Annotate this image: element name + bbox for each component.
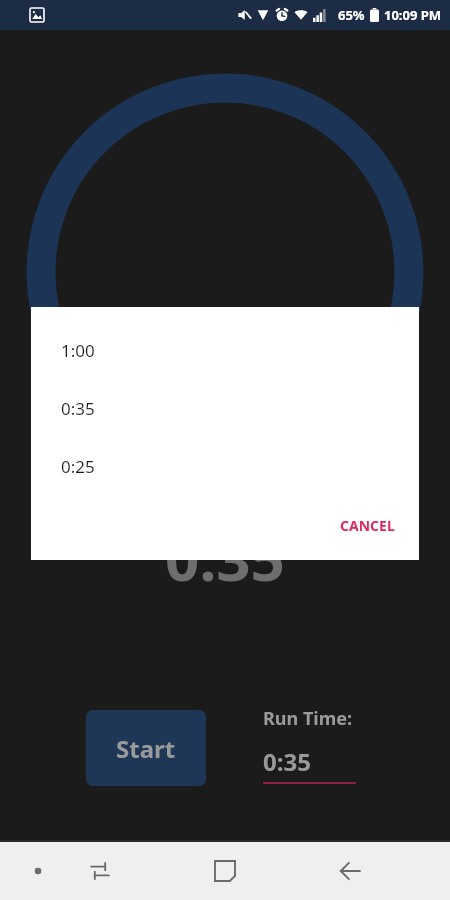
- staticText: Start: [116, 732, 176, 765]
- button[interactable]: CANCEL: [332, 510, 403, 541]
- button[interactable]: 0:25: [31, 437, 419, 495]
- button[interactable]: Switch apps: [78, 849, 122, 893]
- staticText: CANCEL: [340, 516, 395, 535]
- staticText: 10:09 PM: [384, 6, 442, 24]
- staticText: 1:00: [61, 339, 95, 362]
- button[interactable]: Back: [328, 849, 372, 893]
- staticText: 0:25: [61, 455, 95, 478]
- button[interactable]: Menu: [16, 849, 60, 893]
- button[interactable]: 1:00: [31, 321, 419, 379]
- staticText: 0:35: [263, 745, 311, 778]
- button[interactable]: Run Time:: [263, 706, 356, 784]
- staticText: 0:35: [61, 397, 95, 420]
- button[interactable]: 0:35: [31, 379, 419, 437]
- button[interactable]: Recent apps: [203, 849, 247, 893]
- staticText: 0:35: [0, 517, 450, 599]
- button[interactable]: Start: [86, 710, 206, 786]
- staticText: 65%: [338, 6, 365, 24]
- staticText: Run Time:: [263, 706, 353, 731]
